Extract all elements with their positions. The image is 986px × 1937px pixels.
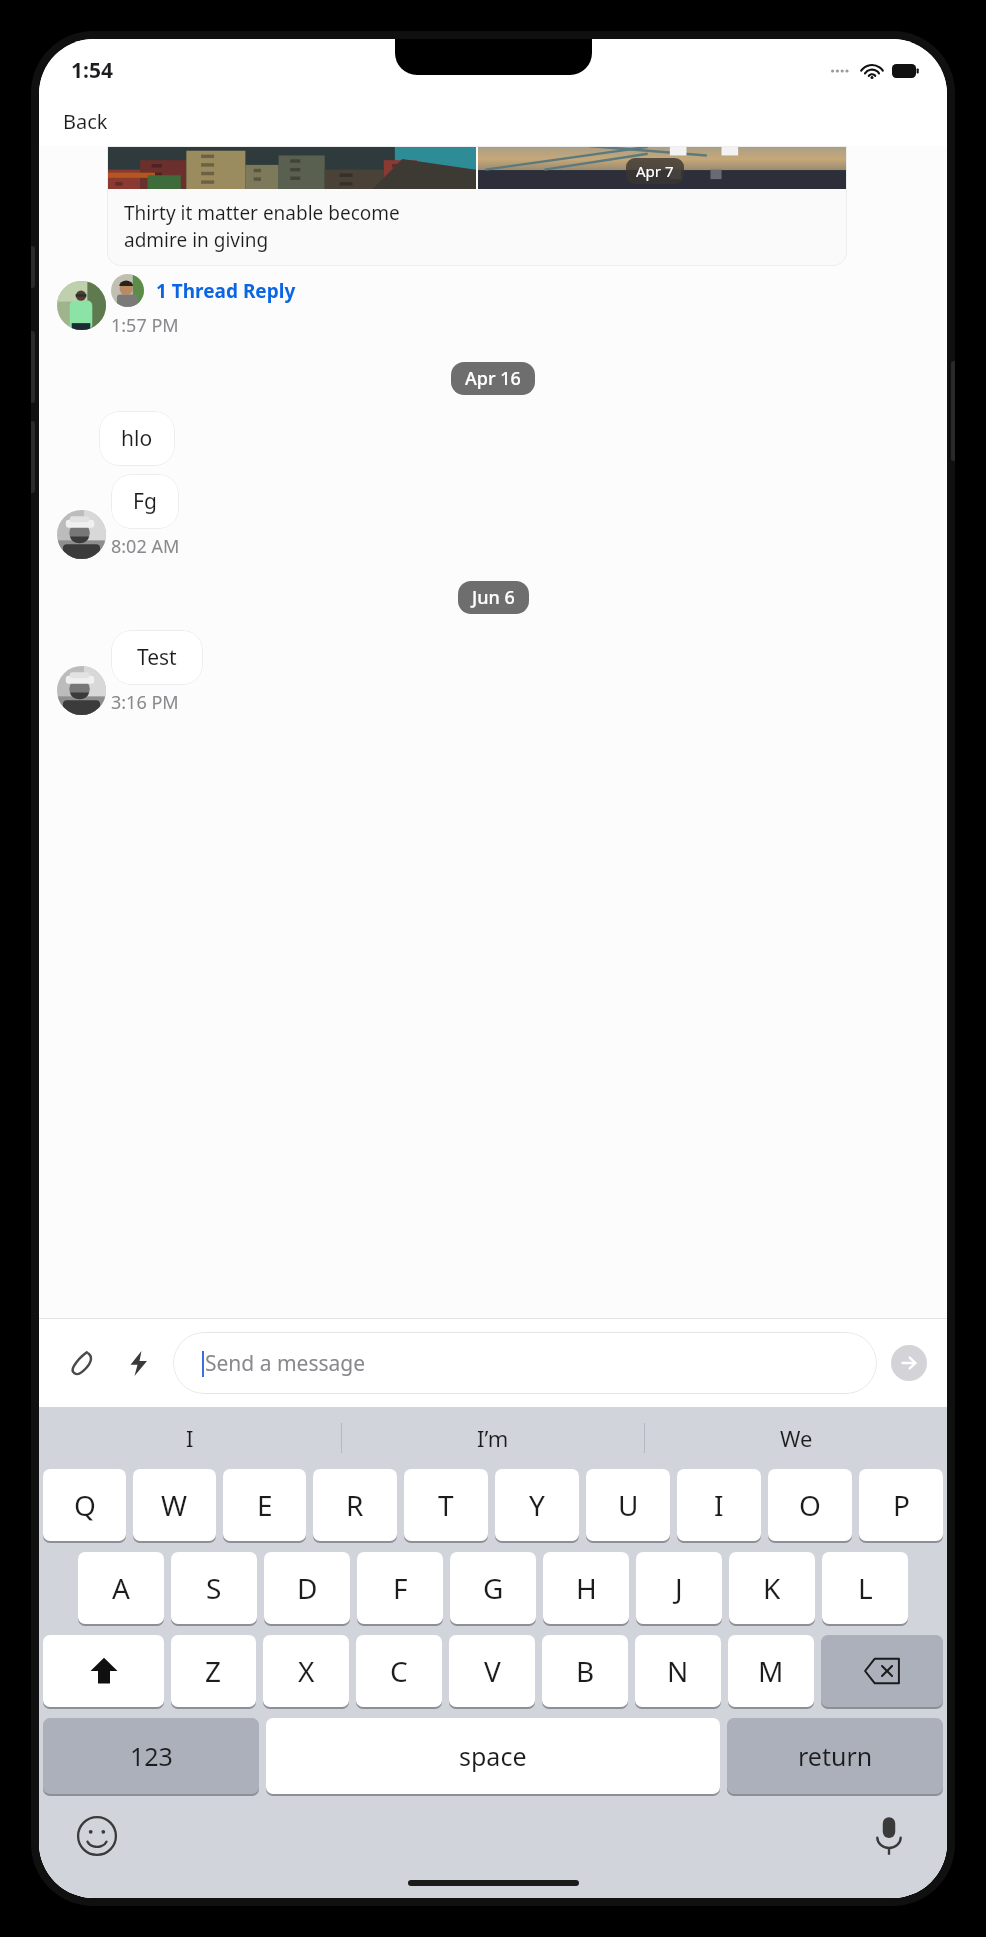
button[interactable]: Back [57, 104, 114, 139]
button[interactable]: A [78, 1552, 164, 1624]
staticText: Fg [133, 487, 157, 516]
staticText: G [483, 1569, 504, 1607]
staticText: S [206, 1569, 222, 1607]
staticText: Z [205, 1652, 222, 1690]
staticText: 8:02 AM [111, 534, 180, 559]
staticText: M [758, 1652, 784, 1690]
button[interactable]: M [728, 1635, 814, 1707]
button[interactable]: Y [495, 1469, 579, 1541]
staticText: O [799, 1486, 821, 1524]
staticText: Thirty it matter enable become admire in… [124, 200, 400, 253]
staticText: I’m [477, 1423, 509, 1453]
button[interactable]: Apr 16 [451, 362, 535, 395]
button[interactable]: I’m [342, 1407, 644, 1469]
button[interactable]: D [264, 1552, 350, 1624]
button[interactable]: X [263, 1635, 349, 1707]
staticText: 123 [130, 1739, 173, 1773]
other: Backspace [821, 1635, 943, 1707]
staticText: A [112, 1569, 130, 1607]
staticText: E [257, 1486, 273, 1524]
button[interactable]: We [645, 1407, 947, 1469]
staticText: N [667, 1652, 689, 1690]
button[interactable]: 123 [43, 1718, 259, 1794]
button[interactable]: K [729, 1552, 815, 1624]
staticText: Back [63, 108, 108, 135]
staticText: Q [74, 1486, 96, 1524]
button[interactable]: hlo [99, 411, 175, 466]
staticText: J [675, 1569, 683, 1607]
staticText: D [297, 1569, 318, 1607]
button[interactable]: Z [171, 1635, 256, 1707]
button[interactable]: H [543, 1552, 629, 1624]
button[interactable]: W [133, 1469, 216, 1541]
staticText: T [438, 1486, 454, 1524]
staticText: 1 Thread Reply [156, 278, 296, 304]
button[interactable]: B [542, 1635, 628, 1707]
staticText: space [459, 1739, 527, 1773]
staticText: Jun 6 [472, 585, 515, 610]
button[interactable]: Apr 7 [107, 146, 847, 266]
button[interactable]: Send [891, 1345, 927, 1381]
staticText: Y [529, 1486, 545, 1524]
other: Shift [43, 1635, 164, 1707]
button[interactable]: U [586, 1469, 670, 1541]
staticText: W [161, 1486, 188, 1524]
button[interactable]: C [356, 1635, 442, 1707]
staticText: K [763, 1569, 781, 1607]
staticText: Send a message [205, 1349, 366, 1378]
button[interactable]: Fg [111, 474, 179, 529]
staticText: 3:16 PM [111, 690, 179, 715]
button[interactable]: I [677, 1469, 761, 1541]
staticText: We [780, 1423, 813, 1453]
staticText: return [798, 1739, 873, 1773]
staticText: L [858, 1569, 873, 1607]
staticText: 1:57 PM [111, 313, 179, 338]
button[interactable]: Quick actions [115, 1340, 161, 1386]
button[interactable]: R [313, 1469, 397, 1541]
button[interactable]: 1 Thread Reply [111, 272, 296, 309]
button[interactable]: N [635, 1635, 721, 1707]
button[interactable]: O [768, 1469, 852, 1541]
staticText: 1:54 [71, 56, 113, 85]
staticText: R [346, 1486, 364, 1524]
staticText: Test [137, 643, 177, 672]
button[interactable]: Jun 6 [458, 581, 529, 614]
button[interactable]: J [636, 1552, 722, 1624]
button[interactable] [821, 1635, 943, 1707]
button[interactable]: return [727, 1718, 943, 1794]
button[interactable]: Q [43, 1469, 126, 1541]
button[interactable]: P [859, 1469, 943, 1541]
staticText: U [618, 1486, 639, 1524]
button[interactable]: space [266, 1718, 720, 1794]
staticText: I [714, 1486, 724, 1524]
staticText: hlo [121, 424, 153, 453]
staticText: B [576, 1652, 595, 1690]
staticText: I [186, 1423, 194, 1453]
staticText: X [298, 1652, 315, 1690]
button[interactable]: L [822, 1552, 908, 1624]
button[interactable]: Dictation [863, 1810, 915, 1862]
staticText: F [393, 1569, 408, 1607]
staticText: C [390, 1652, 408, 1690]
staticText: P [893, 1486, 910, 1524]
staticText: Apr 16 [465, 366, 521, 391]
button[interactable]: T [404, 1469, 488, 1541]
button[interactable]: Emoji [71, 1810, 123, 1862]
button[interactable]: Send a message [173, 1332, 877, 1394]
staticText: H [576, 1569, 597, 1607]
button[interactable] [43, 1635, 164, 1707]
button[interactable]: S [171, 1552, 257, 1624]
button[interactable]: Attach file [59, 1340, 105, 1386]
button[interactable]: F [357, 1552, 443, 1624]
staticText: Apr 7 [636, 161, 674, 181]
button[interactable]: G [450, 1552, 536, 1624]
button[interactable]: V [449, 1635, 535, 1707]
staticText: V [484, 1652, 501, 1690]
button[interactable]: Test [111, 630, 203, 685]
button[interactable]: E [223, 1469, 306, 1541]
button[interactable]: I [39, 1407, 341, 1469]
